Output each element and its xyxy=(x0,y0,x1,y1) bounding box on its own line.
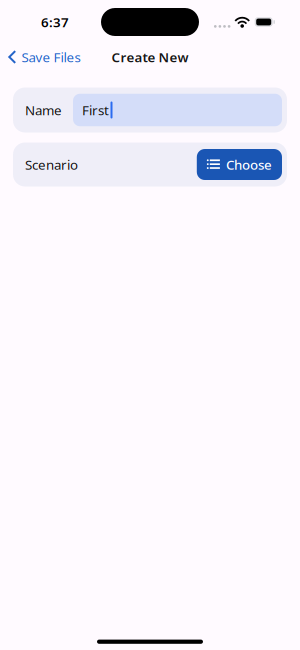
staticText: Choose xyxy=(226,156,272,173)
button[interactable]: First xyxy=(73,94,282,126)
staticText: Scenario xyxy=(25,156,78,173)
staticText: Save Files xyxy=(21,48,80,66)
staticText: Name xyxy=(25,101,62,119)
staticText: 6:37 xyxy=(41,13,69,31)
button[interactable]: Choose xyxy=(197,149,282,180)
staticText: Create New xyxy=(111,48,188,66)
staticText: First xyxy=(82,101,109,119)
button[interactable]: Save Files xyxy=(0,43,80,71)
